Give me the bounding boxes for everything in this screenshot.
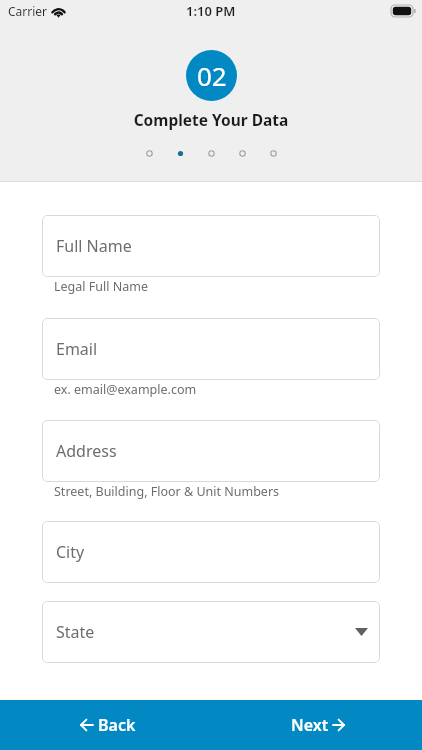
button[interactable]: Address: [42, 420, 380, 482]
button[interactable]: City: [42, 521, 380, 583]
button[interactable]: Back: [0, 700, 211, 750]
staticText: State: [56, 621, 95, 643]
staticText: Address: [56, 440, 117, 462]
other: Open State dropdown: [355, 628, 368, 636]
staticText: Legal Full Name: [54, 278, 148, 295]
staticText: Complete Your Data: [0, 109, 422, 130]
staticText: Email: [56, 338, 98, 360]
button[interactable]: State: [42, 601, 380, 663]
button[interactable]: Email: [42, 318, 380, 380]
staticText: Carrier: [8, 3, 48, 19]
button[interactable]: Full Name: [42, 215, 380, 277]
staticText: ex. email@example.com: [54, 381, 197, 398]
staticText: Next: [291, 714, 329, 736]
staticText: 1:10 PM: [186, 2, 236, 20]
staticText: Back: [98, 714, 136, 736]
other: Battery full: [391, 5, 416, 17]
staticText: City: [56, 541, 85, 563]
staticText: 02: [197, 58, 227, 93]
staticText: Street, Building, Floor & Unit Numbers: [54, 483, 280, 500]
staticText: Full Name: [56, 235, 132, 257]
button[interactable]: Next: [211, 700, 422, 750]
other: Wi-Fi signal: [51, 6, 66, 17]
